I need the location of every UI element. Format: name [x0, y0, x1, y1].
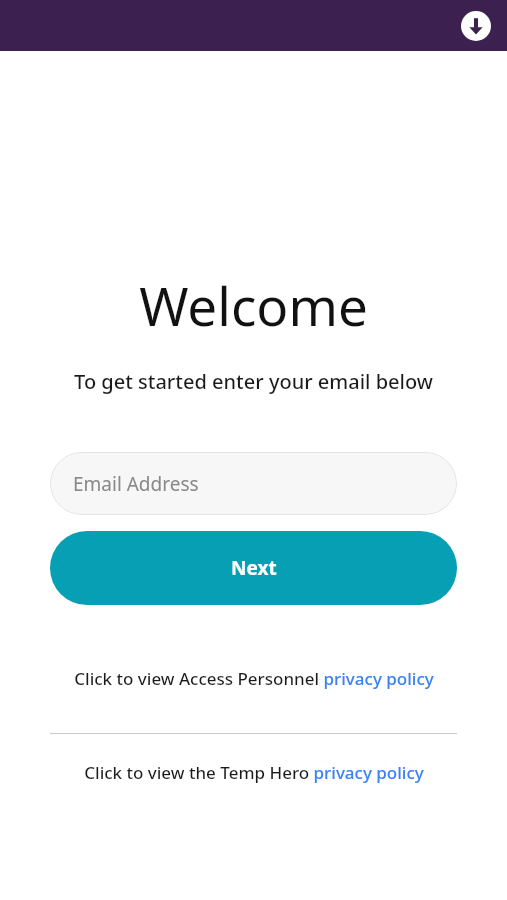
staticText: Email Address: [73, 471, 199, 497]
button[interactable]: Email Address: [50, 452, 457, 515]
button[interactable]: Next: [50, 531, 457, 605]
button[interactable]: Download: [459, 9, 493, 43]
staticText: To get started enter your email below: [74, 368, 433, 395]
staticText: Next: [231, 555, 277, 581]
button[interactable]: Click to view Access Personnel privacy p…: [0, 661, 507, 696]
staticText: Click to view Access Personnel privacy p…: [74, 667, 434, 690]
button[interactable]: Click to view the Temp Hero privacy poli…: [0, 755, 507, 790]
staticText: Welcome: [139, 269, 368, 341]
staticText: Click to view the Temp Hero privacy poli…: [84, 761, 424, 784]
